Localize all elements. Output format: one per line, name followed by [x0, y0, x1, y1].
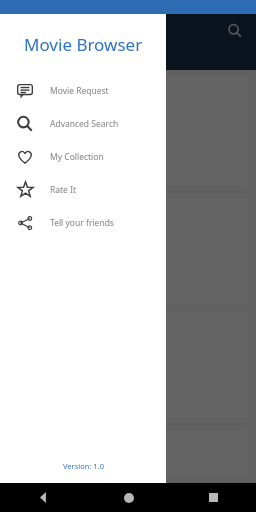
button[interactable]: Star Wars: Episode VII...: [8, 312, 248, 422]
button[interactable]: Search: [224, 20, 246, 42]
staticText: Movie Browser: [24, 33, 143, 56]
button[interactable]: Movie Request: [0, 74, 166, 107]
button[interactable]: My Collection: [0, 140, 166, 173]
button[interactable]: Deadpool 2: [8, 76, 248, 186]
button[interactable]: Back: [0, 483, 86, 512]
button[interactable]: Advanced Search: [0, 107, 166, 140]
button[interactable]: Tell your friends: [0, 206, 166, 239]
button[interactable]: Rate It: [0, 173, 166, 206]
button[interactable]: Recents: [171, 483, 256, 512]
button[interactable]: [8, 430, 248, 477]
button[interactable]: Big Hero 6: [8, 194, 248, 304]
staticText: My Collection: [50, 151, 104, 163]
staticText: Movie Request: [50, 85, 109, 97]
staticText: Rate It: [50, 184, 77, 196]
staticText: Deadpool 2: [16, 154, 60, 165]
staticText: Version: 1.0: [63, 461, 104, 471]
staticText: Movie Browser: [12, 22, 103, 40]
button[interactable]: Home: [86, 483, 171, 512]
staticText: Tell your friends: [50, 217, 114, 229]
staticText: Advanced Search: [50, 118, 119, 130]
